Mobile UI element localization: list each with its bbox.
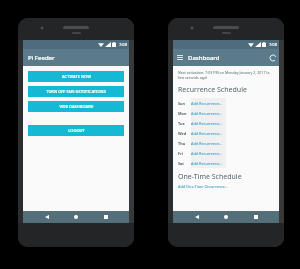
staticText: WEB DASHBOARD bbox=[59, 104, 94, 109]
staticText: Add Recurrence... bbox=[191, 131, 223, 136]
button[interactable]: Refresh bbox=[266, 51, 279, 64]
button[interactable]: Add One-Time Occurrence... bbox=[178, 184, 274, 189]
staticText: TURN OFF SMS NOTIFICATIONS bbox=[46, 89, 106, 94]
button[interactable]: Add Recurrence... bbox=[191, 158, 274, 168]
staticText: Sat bbox=[178, 161, 191, 166]
staticText: Add Recurrence... bbox=[191, 101, 223, 106]
button[interactable]: Back bbox=[41, 211, 53, 223]
button[interactable]: Home bbox=[70, 211, 82, 223]
button[interactable]: Add Recurrence... bbox=[191, 118, 274, 128]
staticText: Add Recurrence... bbox=[191, 111, 223, 116]
staticText: Fri bbox=[178, 151, 191, 156]
staticText: 7:08 bbox=[119, 42, 127, 47]
button[interactable]: LOGOUT bbox=[28, 125, 124, 136]
button[interactable]: Back bbox=[191, 211, 203, 223]
staticText: Recurrence Schedule bbox=[178, 85, 247, 95]
button[interactable]: WEB DASHBOARD bbox=[28, 101, 124, 112]
staticText: Sun bbox=[178, 101, 191, 106]
staticText: Add Recurrence... bbox=[191, 151, 223, 156]
staticText: LOGOUT bbox=[68, 128, 85, 133]
button[interactable]: Add Recurrence... bbox=[191, 138, 274, 148]
button[interactable]: Recent apps bbox=[250, 211, 262, 223]
button[interactable]: Add Recurrence... bbox=[191, 128, 274, 138]
staticText: Mon bbox=[178, 111, 191, 116]
staticText: Dashboard bbox=[188, 54, 220, 62]
staticText: Tue bbox=[178, 121, 191, 126]
staticText: Pi Feeder bbox=[28, 54, 55, 62]
staticText: Add Recurrence... bbox=[191, 141, 223, 146]
staticText: Add One-Time Occurrence... bbox=[178, 184, 228, 189]
staticText: Add Recurrence... bbox=[191, 161, 223, 166]
button[interactable]: ACTIVATE NOW bbox=[28, 71, 124, 82]
staticText: 7:08 bbox=[269, 42, 277, 47]
staticText: Thu bbox=[178, 141, 191, 146]
staticText: ACTIVATE NOW bbox=[62, 74, 91, 79]
staticText: Wed bbox=[178, 131, 191, 136]
staticText: Add Recurrence... bbox=[191, 121, 223, 126]
button[interactable]: Home bbox=[220, 211, 232, 223]
button[interactable]: Menu bbox=[173, 51, 186, 64]
button[interactable]: TURN OFF SMS NOTIFICATIONS bbox=[28, 86, 124, 97]
staticText: Next activation: 7:03 PM on Monday Janua… bbox=[178, 70, 274, 80]
button[interactable]: Add Recurrence... bbox=[191, 98, 274, 108]
button[interactable]: Add Recurrence... bbox=[191, 148, 274, 158]
button[interactable]: Add Recurrence... bbox=[191, 108, 274, 118]
button[interactable]: Recent apps bbox=[100, 211, 112, 223]
staticText: One-Time Schedule bbox=[178, 172, 242, 182]
